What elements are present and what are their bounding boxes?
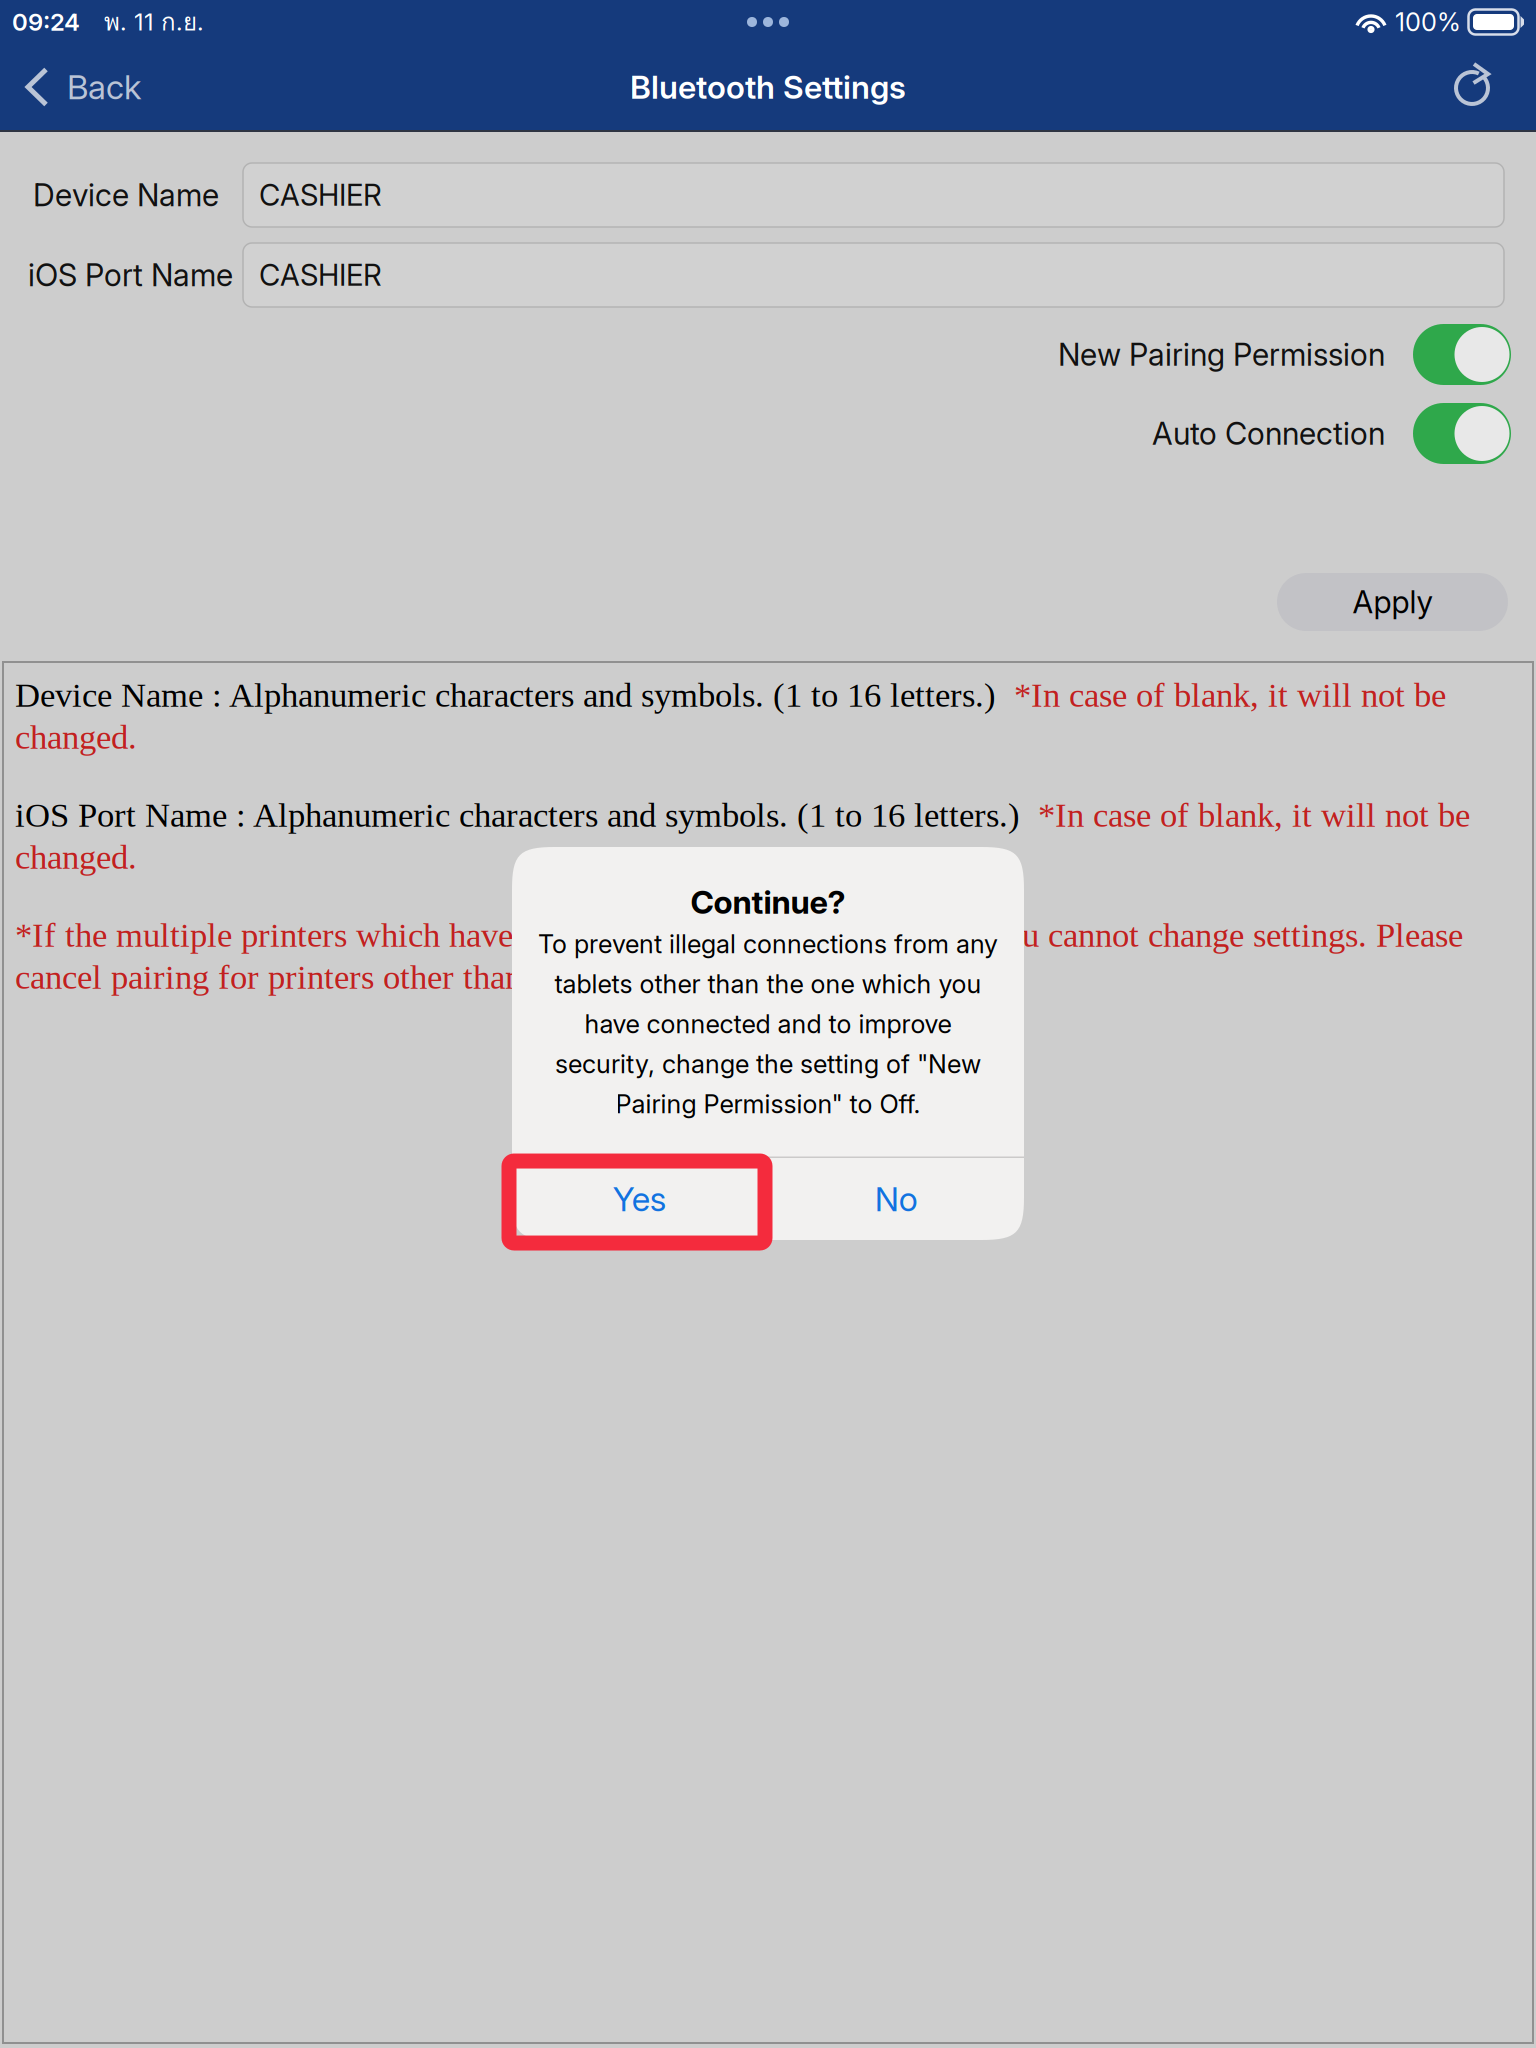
staticText: *In case of blank, it will not be <box>1014 676 1446 714</box>
staticText: Apply <box>1352 583 1432 620</box>
button[interactable]: No <box>769 1158 1024 1240</box>
staticText: CASHIER <box>259 257 382 293</box>
staticText: iOS Port Name : Alphanumeric characters … <box>15 796 1038 834</box>
staticText: changed. <box>15 838 137 876</box>
button[interactable]: New Pairing Permission <box>0 324 1536 385</box>
staticText: New Pairing Permission <box>1058 336 1385 373</box>
button[interactable]: Back <box>0 44 163 130</box>
staticText: พ. 11 ก.ย. <box>80 3 204 41</box>
staticText: have connected and to improve <box>584 1009 951 1039</box>
staticText: 100% <box>1395 7 1461 37</box>
staticText: No <box>875 1179 918 1219</box>
staticText: Bluetooth Settings <box>630 68 906 106</box>
staticText: *If the multiple printers which have the… <box>15 916 1463 954</box>
staticText: To prevent illegal connections from any <box>538 929 998 959</box>
staticText: Yes <box>613 1179 667 1219</box>
staticText: Pairing Permission" to Off. <box>615 1089 920 1119</box>
staticText: 09:24 <box>12 7 80 36</box>
staticText: changed. <box>15 718 137 756</box>
staticText: Continue? <box>690 883 845 921</box>
staticText: tablets other than the one which you <box>554 969 981 999</box>
button[interactable]: CASHIER <box>243 163 1504 227</box>
button[interactable]: Auto Connection <box>0 403 1536 464</box>
staticText: cancel pairing for printers other than t… <box>15 958 866 996</box>
button[interactable]: CASHIER <box>243 243 1504 307</box>
staticText: security, change the setting of "New <box>555 1049 981 1079</box>
staticText: iOS Port Name <box>28 256 233 293</box>
button[interactable]: Refresh <box>1427 43 1536 130</box>
staticText: Device Name : Alphanumeric characters an… <box>15 676 1014 714</box>
button[interactable]: Apply <box>1277 573 1508 631</box>
staticText: *In case of blank, it will not be <box>1038 796 1470 834</box>
staticText: Device Name <box>33 176 219 213</box>
staticText: Auto Connection <box>1152 415 1385 452</box>
button[interactable]: Yes <box>512 1158 767 1240</box>
staticText: Back <box>67 67 141 107</box>
staticText: CASHIER <box>259 177 382 213</box>
